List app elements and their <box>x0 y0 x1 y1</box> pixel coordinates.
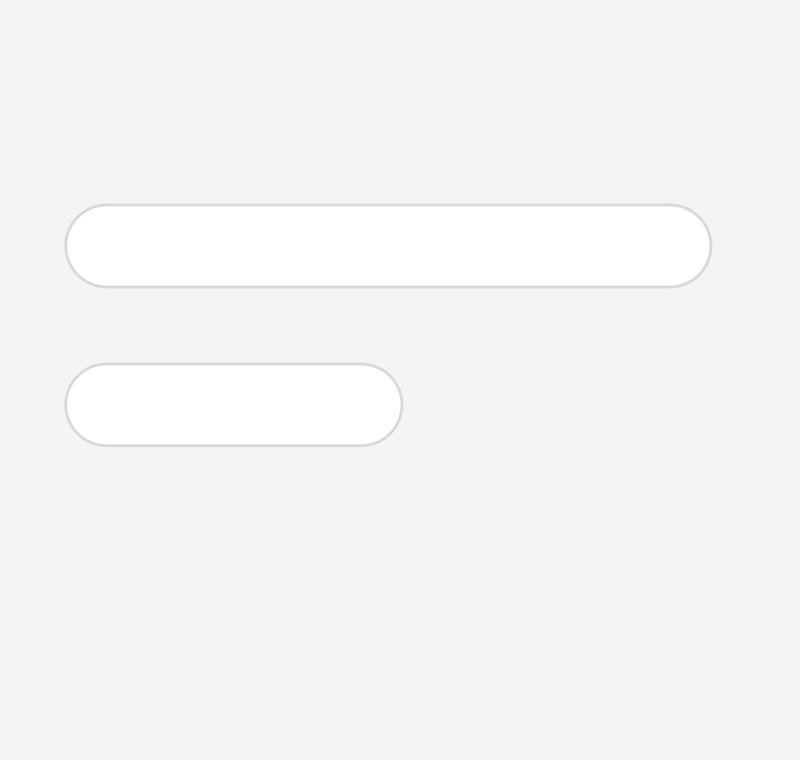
button[interactable]: Loading item <box>66 364 402 446</box>
button[interactable]: Loading item <box>66 205 711 287</box>
